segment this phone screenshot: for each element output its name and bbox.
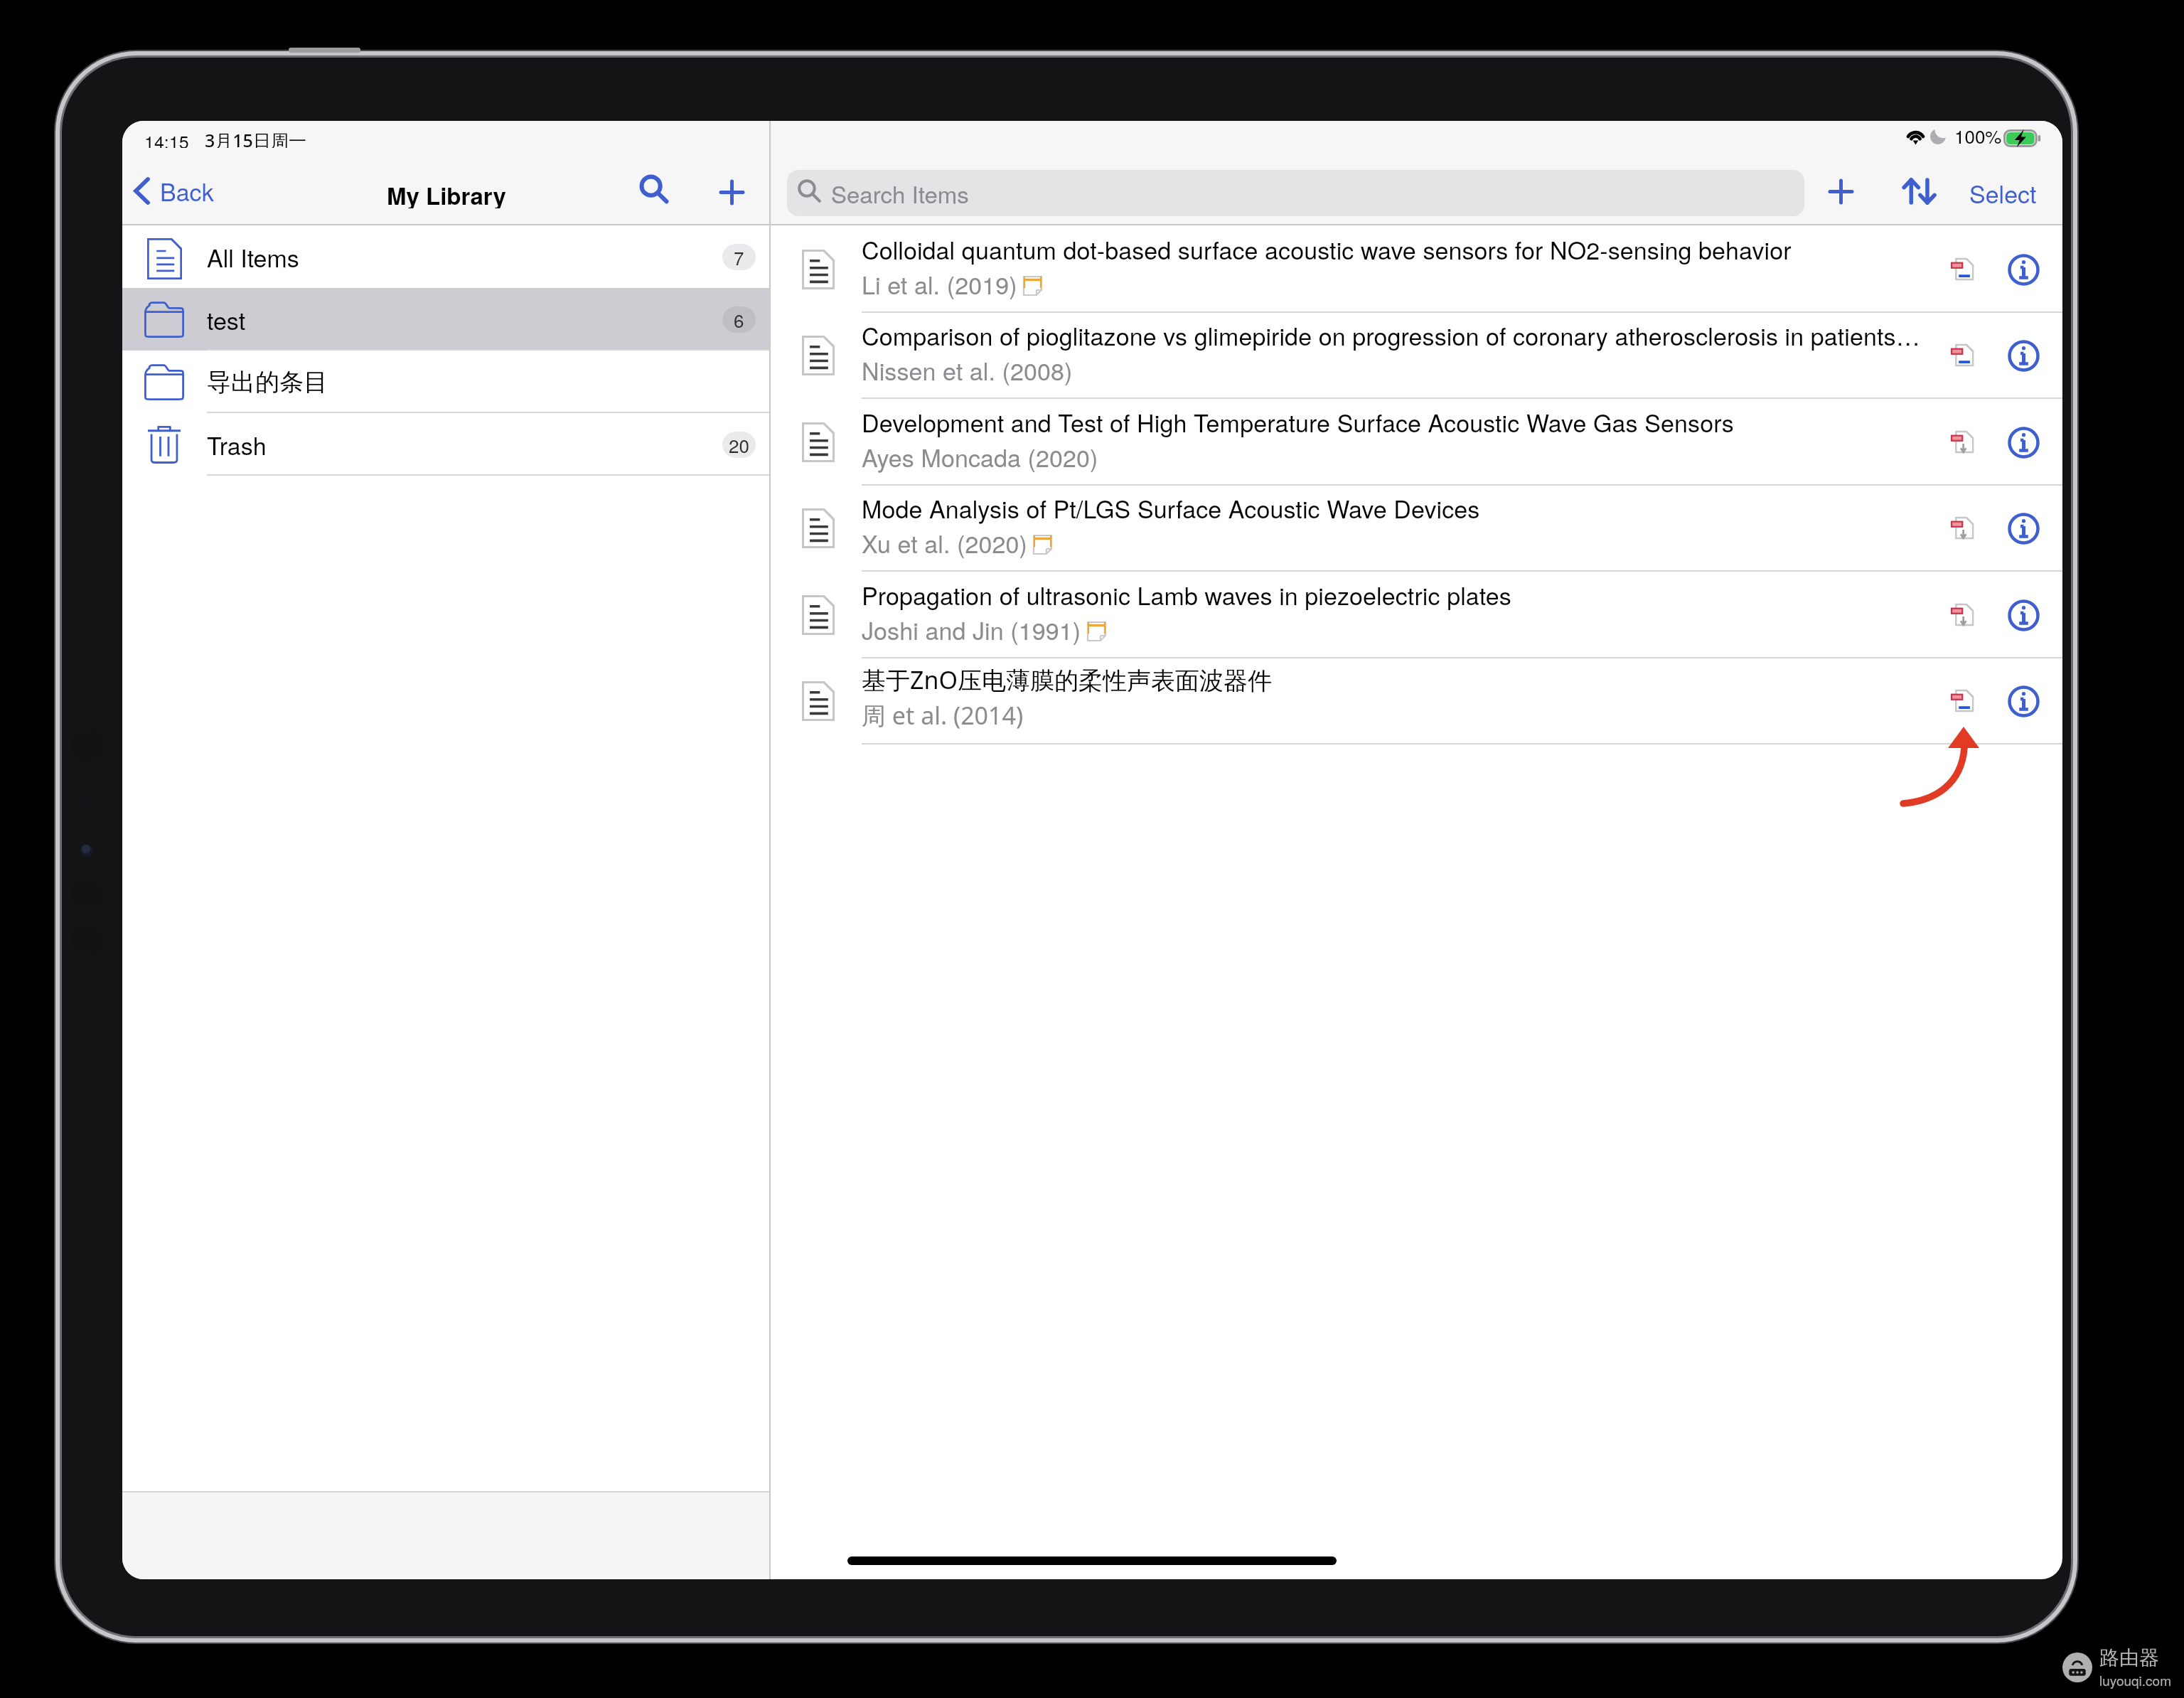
- staticText: Nissen et al. (2008): [862, 353, 1073, 387]
- button[interactable]: Info: [2005, 510, 2042, 547]
- button[interactable]: Development and Test of High Temperature…: [122, 399, 2062, 485]
- staticText: test: [207, 302, 246, 337]
- button[interactable]: Info: [2005, 597, 2042, 634]
- staticText: Search Items: [831, 176, 969, 210]
- staticText: 基于ZnO压电薄膜的柔性声表面波器件: [862, 663, 1273, 696]
- button[interactable]: PDF attachment: [1940, 592, 1985, 637]
- staticText: Comparison of pioglitazone vs glimepirid…: [862, 318, 1920, 353]
- button[interactable]: Info: [2005, 683, 2042, 720]
- button[interactable]: PDF attachment: [1940, 247, 1985, 292]
- button[interactable]: Select: [1956, 170, 2049, 216]
- button[interactable]: Trash: [122, 413, 769, 476]
- staticText: 100%: [1954, 122, 2002, 145]
- staticText: Xu et al. (2020): [862, 525, 1027, 560]
- staticText: Joshi and Jin (1991): [862, 612, 1081, 646]
- staticText: 周 et al. (2014): [862, 699, 1024, 732]
- button[interactable]: Propagation of ultrasonic Lamb waves in …: [122, 572, 2062, 658]
- staticText: Propagation of ultrasonic Lamb waves in …: [862, 577, 1511, 612]
- button[interactable]: Add collection: [707, 167, 756, 217]
- button[interactable]: Back: [127, 170, 221, 211]
- button[interactable]: PDF attachment: [1940, 506, 1985, 550]
- staticText: Back: [160, 173, 214, 208]
- button[interactable]: Info: [2005, 251, 2042, 288]
- staticText: Mode Analysis of Pt/LGS Surface Acoustic…: [862, 491, 1480, 525]
- staticText: All Items: [207, 240, 299, 274]
- button[interactable]: All Items: [122, 225, 769, 288]
- staticText: 20: [729, 432, 749, 458]
- staticText: 3月15日周一: [205, 128, 306, 148]
- button[interactable]: Comparison of pioglitazone vs glimepirid…: [122, 312, 2062, 398]
- staticText: 7: [734, 244, 744, 270]
- button[interactable]: Search Items: [787, 170, 1804, 216]
- button[interactable]: Colloidal quantum dot-based surface acou…: [122, 226, 2062, 312]
- staticText: 6: [734, 306, 744, 333]
- staticText: 导出的条目: [207, 367, 328, 397]
- staticText: luyouqi.com: [2099, 1670, 2171, 1689]
- button[interactable]: test: [122, 288, 769, 351]
- staticText: My Library: [387, 178, 506, 208]
- staticText: 14:15: [144, 128, 189, 148]
- staticText: Li et al. (2019): [862, 267, 1017, 301]
- staticText: Trash: [207, 427, 267, 462]
- button[interactable]: Mode Analysis of Pt/LGS Surface Acoustic…: [122, 485, 2062, 571]
- staticText: Ayes Moncada (2020): [862, 439, 1098, 474]
- staticText: 路由器: [2099, 1645, 2159, 1670]
- button[interactable]: Info: [2005, 337, 2042, 374]
- staticText: Development and Test of High Temperature…: [862, 405, 1734, 439]
- button[interactable]: PDF attachment: [1940, 678, 1985, 723]
- button[interactable]: Add item: [1816, 166, 1865, 216]
- staticText: Colloidal quantum dot-based surface acou…: [862, 232, 1792, 267]
- staticText: Select: [1969, 176, 2037, 210]
- button[interactable]: Info: [2005, 424, 2042, 461]
- button[interactable]: 基于ZnO压电薄膜的柔性声表面波器件: [122, 658, 2062, 744]
- button[interactable]: Sort: [1894, 166, 1944, 216]
- button[interactable]: 导出的条目: [122, 351, 769, 413]
- button[interactable]: Search: [628, 164, 680, 214]
- button[interactable]: PDF attachment: [1940, 420, 1985, 464]
- button[interactable]: PDF attachment: [1940, 333, 1985, 378]
